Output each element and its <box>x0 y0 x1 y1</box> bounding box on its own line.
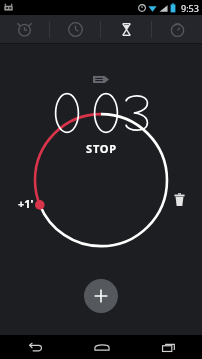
button[interactable]: Recent apps <box>135 335 202 359</box>
staticText: 9:53 <box>181 2 199 14</box>
button[interactable]: STOP <box>86 141 117 156</box>
button[interactable]: Clock <box>50 15 100 44</box>
staticText: +1' <box>18 196 34 211</box>
button[interactable]: Stopwatch <box>152 15 202 44</box>
button[interactable]: Delete timer <box>168 188 190 210</box>
button[interactable]: +1' <box>18 196 34 211</box>
staticText: STOP <box>86 141 117 156</box>
button[interactable]: Timer <box>101 15 151 44</box>
button[interactable]: Back <box>0 335 68 359</box>
button[interactable]: Home <box>68 335 135 359</box>
button[interactable]: Add timer <box>84 279 118 313</box>
button[interactable]: Label <box>91 73 111 85</box>
button[interactable]: Alarm <box>0 15 49 44</box>
